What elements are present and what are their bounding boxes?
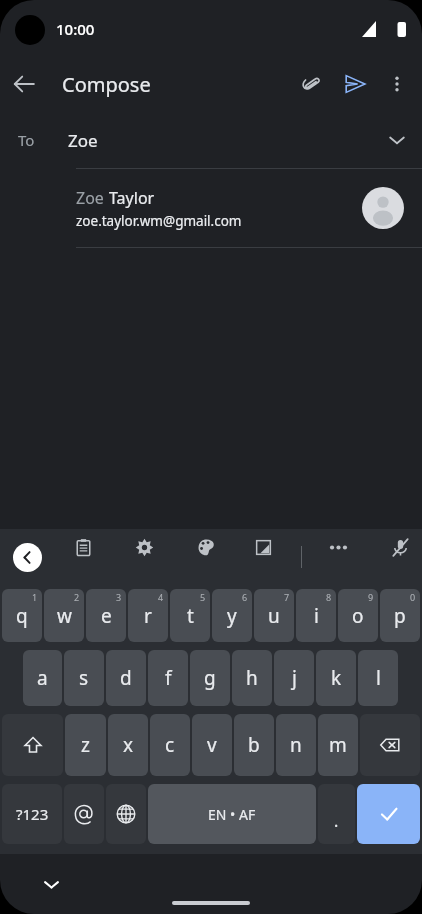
staticText: m — [329, 732, 347, 758]
button[interactable]: Resize keyboard — [245, 529, 281, 565]
staticText: 9 — [368, 591, 374, 603]
button[interactable]: y — [212, 589, 252, 642]
staticText: y — [227, 603, 237, 629]
staticText: n — [290, 732, 302, 758]
button[interactable]: k — [316, 650, 356, 706]
staticText: 7 — [284, 591, 290, 603]
button[interactable]: More options — [378, 62, 416, 106]
staticText: c — [165, 732, 175, 758]
button[interactable]: Settings — [126, 529, 162, 565]
staticText: ?123 — [16, 804, 49, 824]
button[interactable]: v — [192, 714, 232, 776]
button[interactable]: n — [276, 714, 316, 776]
button[interactable]: Themes — [188, 529, 224, 565]
staticText: j — [292, 665, 297, 691]
button[interactable]: m — [318, 714, 358, 776]
button[interactable]: x — [108, 714, 148, 776]
staticText: h — [246, 665, 258, 691]
staticText: f — [165, 665, 172, 691]
button[interactable]: q — [2, 589, 42, 642]
staticText: e — [101, 603, 112, 629]
button[interactable]: r — [128, 589, 168, 642]
button[interactable]: . — [318, 784, 355, 844]
staticText: o — [352, 603, 364, 629]
staticText: 4 — [158, 591, 164, 603]
button[interactable]: i — [296, 589, 336, 642]
button[interactable]: Back — [0, 60, 48, 108]
button[interactable]: b — [234, 714, 274, 776]
staticText: 8 — [326, 591, 332, 603]
staticText: a — [37, 665, 48, 691]
button[interactable]: p — [380, 589, 420, 642]
staticText: u — [268, 603, 280, 629]
staticText: q — [16, 603, 28, 629]
button[interactable]: Backspace — [360, 714, 420, 776]
button[interactable]: Send — [332, 61, 378, 107]
button[interactable]: s — [64, 650, 104, 706]
staticText: 6 — [242, 591, 248, 603]
staticText: z — [81, 732, 90, 758]
button[interactable]: c — [150, 714, 190, 776]
staticText: t — [187, 603, 194, 629]
staticText: Taylor — [109, 187, 155, 209]
button[interactable]: ?123 — [2, 784, 62, 844]
staticText: zoe.taylor.wm@gmail.com — [76, 212, 242, 230]
button[interactable]: EN • AF — [148, 784, 316, 844]
button[interactable]: Voice input off — [382, 529, 418, 565]
staticText: r — [144, 603, 152, 629]
staticText: l — [376, 665, 381, 691]
staticText: g — [204, 665, 216, 691]
staticText: s — [79, 665, 89, 691]
button[interactable]: h — [232, 650, 272, 706]
button[interactable]: a — [23, 650, 62, 706]
button[interactable]: Previous — [13, 543, 42, 572]
button[interactable]: j — [274, 650, 314, 706]
button[interactable]: o — [338, 589, 378, 642]
button[interactable]: Clipboard — [65, 529, 101, 565]
button[interactable]: g — [190, 650, 230, 706]
button[interactable]: w — [44, 589, 84, 642]
button[interactable]: f — [148, 650, 188, 706]
staticText: 5 — [200, 591, 206, 603]
button[interactable]: At sign — [64, 784, 104, 844]
staticText: v — [207, 732, 217, 758]
staticText: w — [57, 603, 72, 629]
button[interactable]: u — [254, 589, 294, 642]
staticText: . — [334, 810, 339, 832]
button[interactable]: Zoe — [0, 169, 422, 247]
button[interactable]: Shift — [2, 714, 63, 776]
staticText: Compose — [62, 71, 151, 98]
button[interactable]: t — [170, 589, 210, 642]
staticText: 3 — [116, 591, 122, 603]
button[interactable]: More tools — [320, 529, 356, 565]
button[interactable]: To — [0, 112, 422, 168]
staticText: d — [120, 665, 132, 691]
staticText: 0 — [410, 591, 416, 603]
button[interactable]: Expand recipients — [378, 118, 416, 162]
staticText: k — [331, 665, 342, 691]
button[interactable]: Change language — [106, 784, 146, 844]
button[interactable]: Attach file — [288, 62, 332, 106]
button[interactable]: Hide keyboard — [33, 866, 69, 902]
button[interactable]: d — [106, 650, 146, 706]
staticText: Zoe — [68, 129, 98, 152]
staticText: x — [123, 732, 134, 758]
staticText: Zoe — [76, 187, 109, 209]
staticText: 2 — [74, 591, 80, 603]
staticText: 10:00 — [56, 19, 95, 39]
staticText: p — [394, 603, 406, 629]
button[interactable]: l — [358, 650, 398, 706]
staticText: b — [248, 732, 260, 758]
staticText: EN • AF — [208, 805, 256, 824]
button[interactable]: e — [86, 589, 126, 642]
button[interactable]: z — [65, 714, 106, 776]
staticText: 1 — [32, 591, 38, 603]
staticText: i — [314, 603, 319, 629]
staticText: To — [18, 130, 35, 150]
button[interactable]: Enter — [357, 784, 420, 844]
